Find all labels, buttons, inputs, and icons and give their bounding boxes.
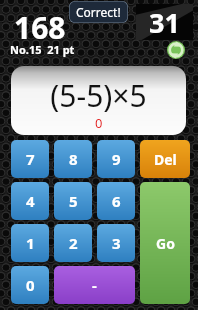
staticText: Del xyxy=(154,150,177,169)
button[interactable]: Refresh xyxy=(167,41,185,59)
staticText: 0 xyxy=(95,114,103,132)
button[interactable]: 5 xyxy=(54,182,92,220)
staticText: 9 xyxy=(112,149,121,169)
staticText: 0 xyxy=(26,275,35,295)
staticText: 1 xyxy=(26,233,35,253)
button[interactable]: 3 xyxy=(97,224,135,262)
staticText: Go xyxy=(156,234,175,253)
staticText: 7 xyxy=(26,149,35,169)
staticText: Correct! xyxy=(76,4,121,20)
button[interactable]: Correct! xyxy=(69,1,128,23)
staticText: 3 xyxy=(112,233,121,253)
button[interactable]: 2 xyxy=(54,224,92,262)
button[interactable]: 1 xyxy=(11,224,49,262)
staticText: 8 xyxy=(69,149,78,169)
staticText: 168 xyxy=(14,7,66,48)
staticText: 4 xyxy=(26,191,35,211)
button[interactable]: 7 xyxy=(11,140,49,178)
staticText: 6 xyxy=(112,191,121,211)
staticText: 5 xyxy=(69,191,78,211)
staticText: 2 xyxy=(69,233,78,253)
button[interactable]: 4 xyxy=(11,182,49,220)
button[interactable]: 8 xyxy=(54,140,92,178)
button[interactable]: Del xyxy=(140,140,190,178)
button[interactable]: - xyxy=(54,266,135,304)
staticText: 31 xyxy=(149,4,180,40)
staticText: (5-5)×5 xyxy=(50,75,147,116)
staticText: No.15 21 pt xyxy=(10,42,75,57)
button[interactable]: 6 xyxy=(97,182,135,220)
button[interactable]: 9 xyxy=(97,140,135,178)
button[interactable]: Go xyxy=(140,182,190,304)
staticText: - xyxy=(92,275,97,295)
button[interactable]: 0 xyxy=(11,266,49,304)
